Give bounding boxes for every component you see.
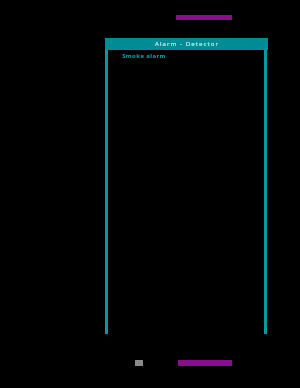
button[interactable]: Smoke alarm: [122, 52, 166, 60]
staticText: Alarm - Detector: [155, 40, 219, 48]
button[interactable]: Alarm - Detector: [105, 38, 268, 50]
staticText: Smoke alarm: [122, 52, 166, 60]
